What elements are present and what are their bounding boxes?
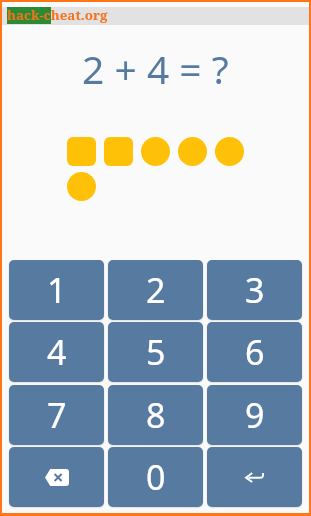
button[interactable]: Backspace [9, 447, 104, 507]
button[interactable]: 3 [207, 260, 302, 320]
staticText: 3 [245, 267, 265, 313]
button[interactable]: Enter [207, 447, 302, 507]
staticText: hack-cheat.org [7, 6, 108, 24]
staticText: 4 [47, 329, 67, 375]
staticText: 6 [245, 329, 265, 375]
button[interactable]: 8 [108, 385, 203, 445]
button[interactable]: 4 [9, 322, 104, 382]
staticText: 7 [47, 392, 67, 438]
button[interactable]: 9 [207, 385, 302, 445]
button[interactable]: 1 [9, 260, 104, 320]
staticText: 2 + 4 = ? [82, 42, 229, 92]
button[interactable]: 6 [207, 322, 302, 382]
staticText: 0 [146, 454, 166, 500]
button[interactable]: 2 [108, 260, 203, 320]
staticText: 2 [146, 267, 166, 313]
staticText: 5 [146, 329, 166, 375]
staticText: 9 [245, 392, 265, 438]
button[interactable]: 5 [108, 322, 203, 382]
staticText: 1 [47, 267, 67, 313]
staticText: 8 [146, 392, 166, 438]
button[interactable]: 0 [108, 447, 203, 507]
button[interactable]: 7 [9, 385, 104, 445]
